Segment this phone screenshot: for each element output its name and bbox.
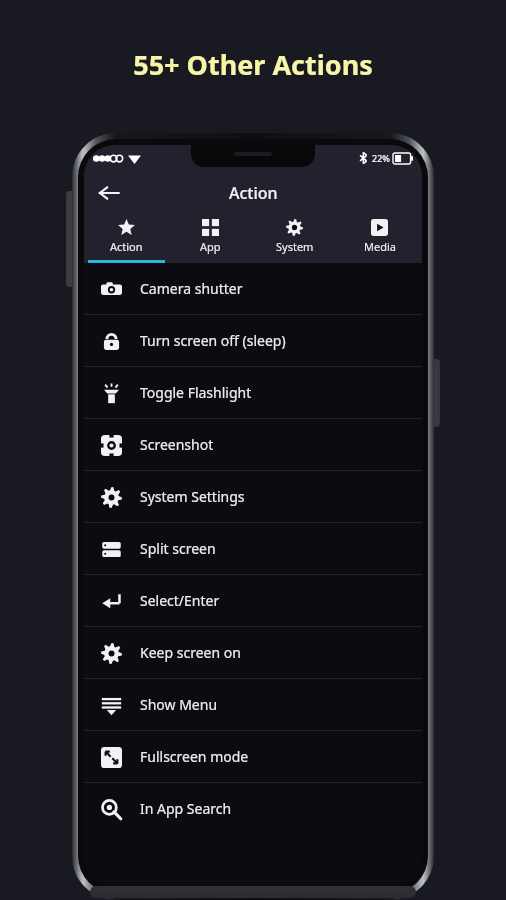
button[interactable]: Turn screen off (sleep): [84, 315, 422, 366]
button[interactable]: System: [252, 215, 337, 263]
staticText: Action: [229, 182, 278, 204]
staticText: Action: [110, 239, 143, 254]
staticText: Select/Enter: [140, 591, 220, 610]
button[interactable]: Media: [337, 215, 422, 263]
button[interactable]: Keep screen on: [84, 627, 422, 678]
staticText: Keep screen on: [140, 643, 241, 662]
staticText: Toggle Flashlight: [140, 383, 252, 402]
staticText: System Settings: [140, 487, 245, 506]
staticText: Media: [364, 239, 396, 254]
button[interactable]: Fullscreen mode: [84, 731, 422, 782]
staticText: In App Search: [140, 799, 232, 818]
staticText: Fullscreen mode: [140, 747, 249, 766]
staticText: Screenshot: [140, 435, 214, 454]
button[interactable]: Select/Enter: [84, 575, 422, 626]
button[interactable]: Show Menu: [84, 679, 422, 730]
button[interactable]: Camera shutter: [84, 263, 422, 314]
button[interactable]: System Settings: [84, 471, 422, 522]
staticText: Show Menu: [140, 695, 218, 714]
button[interactable]: Split screen: [84, 523, 422, 574]
staticText: 22%: [372, 152, 390, 164]
staticText: Turn screen off (sleep): [140, 331, 286, 350]
button[interactable]: Screenshot: [84, 419, 422, 470]
button[interactable]: Back: [88, 172, 130, 214]
button[interactable]: Action: [84, 215, 168, 263]
staticText: Split screen: [140, 539, 216, 558]
staticText: 55+ Other Actions: [133, 46, 373, 83]
staticText: Camera shutter: [140, 279, 243, 298]
button[interactable]: App: [168, 215, 252, 263]
staticText: System: [276, 239, 314, 254]
staticText: App: [200, 239, 221, 254]
button[interactable]: In App Search: [84, 783, 422, 834]
button[interactable]: Toggle Flashlight: [84, 367, 422, 418]
